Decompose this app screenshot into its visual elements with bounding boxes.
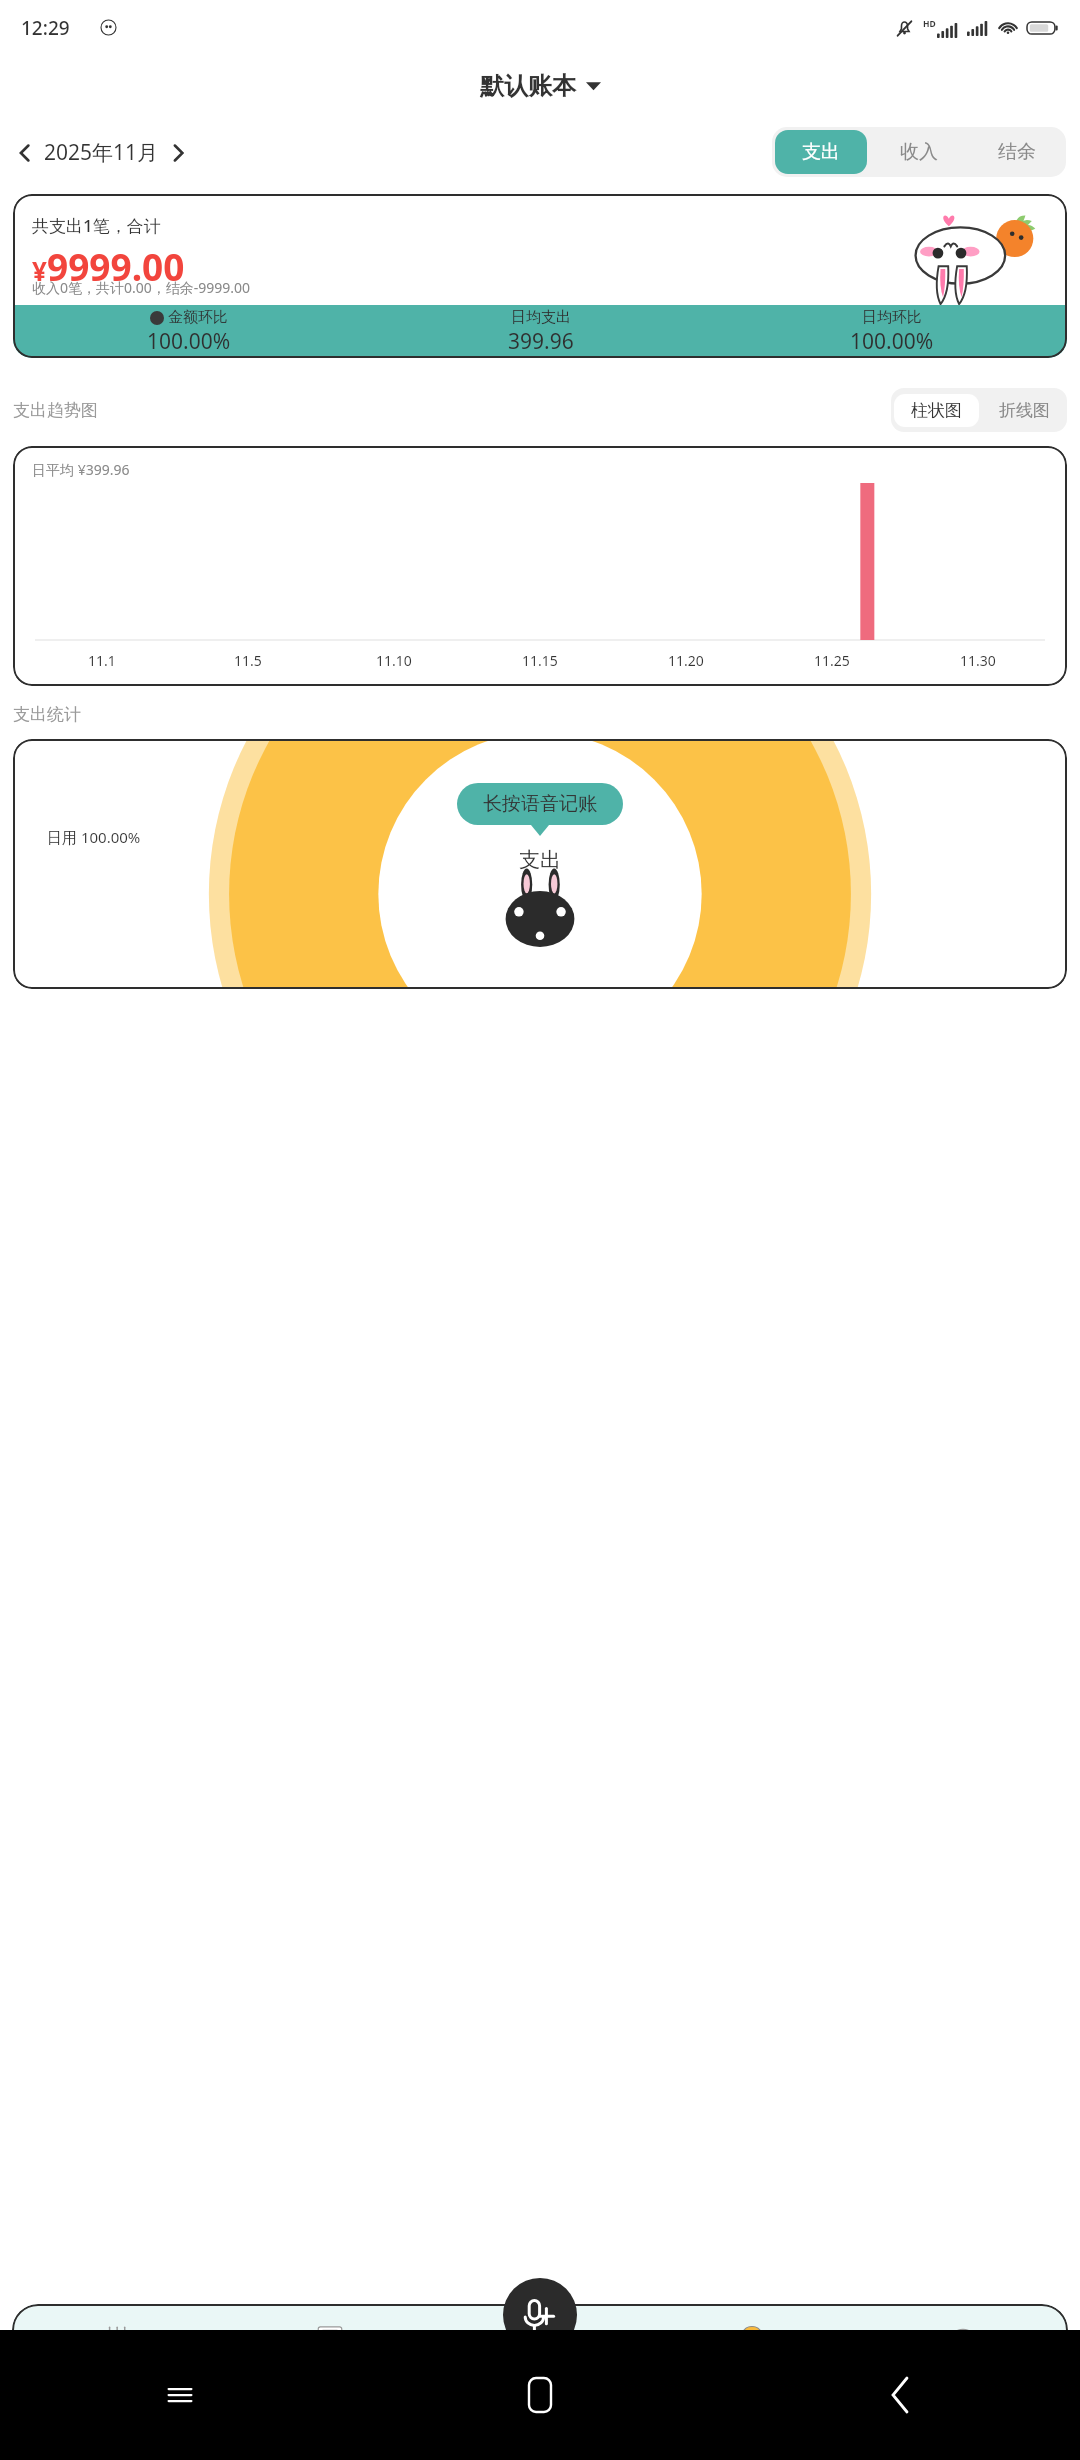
staticText: 支出统计 [13, 704, 81, 725]
button[interactable]: 更多 [857, 2304, 1068, 2402]
staticText: 收入0笔，共计0.00，结余-9999.00 [32, 278, 251, 297]
button[interactable]: 日平均 ¥399.96 [13, 446, 1067, 686]
staticText: ¥ [32, 253, 47, 288]
staticText: 11.25 [814, 651, 850, 670]
staticText: 11.5 [234, 651, 262, 670]
staticText: 日均支出 [511, 308, 571, 327]
staticText: 日用 100.00% [47, 827, 141, 847]
staticText: 日均环比 [862, 308, 922, 327]
button[interactable]: 日用 100.00% [13, 739, 1067, 989]
staticText: 日平均 ¥399.96 [32, 460, 130, 479]
staticText: 柱状图 [911, 400, 962, 421]
staticText: 金额环比 [168, 308, 228, 327]
staticText: 结余 [998, 140, 1036, 164]
staticText: 共支出1笔，合计 [32, 214, 161, 237]
button[interactable]: 长按语音记账 [457, 783, 623, 825]
button[interactable]: 金额环比 [13, 308, 365, 356]
staticText: 收入 [900, 140, 938, 164]
other: Next month [172, 142, 185, 164]
staticText: 399.96 [508, 327, 574, 356]
staticText: 11.20 [668, 651, 704, 670]
button[interactable]: 日均支出 [365, 308, 716, 356]
other: Previous month [18, 142, 31, 164]
staticText: 11.15 [522, 651, 558, 670]
button[interactable]: 结余 [971, 130, 1063, 174]
staticText: 12:29 [21, 15, 70, 41]
button[interactable]: 记一笔 [503, 2278, 577, 2352]
other: Recents [165, 2380, 195, 2410]
staticText: 11.30 [960, 651, 996, 670]
button[interactable]: 折线图 [982, 391, 1067, 430]
staticText: 支出 [802, 140, 840, 164]
button[interactable]: 统计 [646, 2304, 857, 2402]
staticText: HD [923, 18, 936, 30]
staticText: 2025年11月 [44, 138, 159, 167]
staticText: 100.00% [147, 327, 231, 356]
staticText: 9999.00 [47, 241, 185, 291]
staticText: 默认账本 [480, 71, 576, 101]
staticText: 100.00% [850, 327, 934, 356]
button[interactable]: 柱状图 [894, 394, 979, 427]
button[interactable]: 默认账本 [474, 69, 607, 103]
button[interactable]: 支出 [775, 130, 867, 174]
staticText: 支出 [519, 847, 561, 873]
staticText: 折线图 [999, 400, 1050, 421]
button[interactable]: 记账 [224, 2304, 435, 2402]
button[interactable]: 收入 [873, 130, 965, 174]
button[interactable]: Previous month [14, 132, 189, 173]
staticText: 支出趋势图 [13, 400, 98, 421]
staticText: 11.10 [376, 651, 412, 670]
button[interactable]: 共支出1笔，合计 [13, 194, 1067, 358]
button[interactable]: 预算 [12, 2304, 224, 2402]
other: Back [890, 2378, 910, 2412]
other: Home [529, 2378, 551, 2412]
staticText: 长按语音记账 [483, 792, 597, 816]
button[interactable]: 日均环比 [716, 308, 1067, 356]
staticText: 11.1 [88, 651, 116, 670]
